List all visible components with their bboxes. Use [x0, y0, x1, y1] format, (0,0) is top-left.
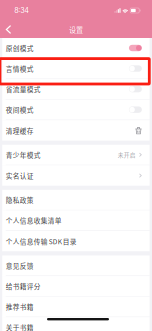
staticText: 言情模式: [6, 64, 34, 73]
button[interactable]: 省流量模式: [2, 79, 150, 100]
staticText: 清理缓存: [6, 126, 34, 135]
staticText: 个人信息传输 SDK 目录: [6, 236, 77, 246]
staticText: 隐私政策: [6, 195, 34, 205]
button[interactable]: 隐私政策: [2, 190, 150, 210]
staticText: 未开启: [118, 151, 136, 159]
button[interactable]: 清理缓存: [2, 120, 150, 141]
button[interactable]: 言情模式: [2, 58, 150, 79]
staticText: 推荐书籍: [6, 302, 34, 311]
staticText: 省流量模式: [6, 84, 41, 94]
staticText: 设置: [69, 24, 83, 35]
staticText: 实名认证: [6, 171, 34, 180]
button[interactable]: 关于书籍: [2, 317, 150, 331]
button[interactable]: 个人信息传输 SDK 目录: [2, 231, 150, 251]
button[interactable]: 推荐书籍: [2, 297, 150, 317]
button[interactable]: 意见反馈: [2, 255, 150, 276]
button[interactable]: 实名认证: [2, 165, 150, 186]
staticText: 夜间模式: [6, 105, 34, 114]
staticText: 意见反馈: [6, 261, 34, 270]
staticText: 个人信息收集清单: [6, 216, 62, 225]
staticText: 8:34: [14, 6, 29, 15]
staticText: 关于书籍: [6, 323, 34, 331]
staticText: 青少年模式: [6, 150, 41, 160]
button[interactable]: 个人信息收集清单: [2, 210, 150, 231]
staticText: 原创模式: [6, 43, 34, 53]
button[interactable]: 夜间模式: [2, 100, 150, 120]
button[interactable]: 青少年模式: [2, 145, 150, 165]
staticText: 给书籍评分: [6, 281, 41, 291]
button[interactable]: 给书籍评分: [2, 276, 150, 297]
button[interactable]: 原创模式: [2, 38, 150, 59]
button[interactable]: Back: [0, 19, 17, 39]
